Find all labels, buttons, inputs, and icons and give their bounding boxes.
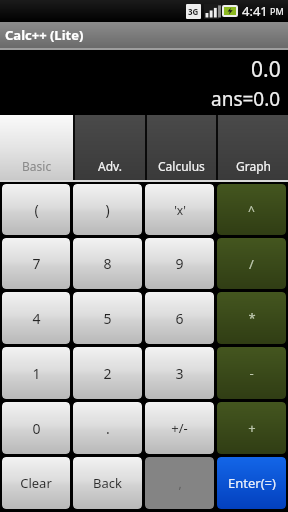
button[interactable]: Enter(=) — [217, 457, 286, 509]
button[interactable]: + — [217, 402, 286, 454]
staticText: Calculus — [158, 158, 205, 174]
staticText: / — [249, 255, 254, 273]
staticText: 3G — [188, 6, 199, 17]
button[interactable]: . — [73, 402, 142, 454]
staticText: Adv. — [98, 158, 122, 174]
staticText: . — [106, 419, 110, 438]
staticText: ans=0.0 — [211, 86, 281, 112]
button[interactable]: ^ — [217, 184, 286, 235]
staticText: - — [249, 364, 254, 382]
button[interactable]: * — [217, 292, 286, 344]
button[interactable]: 3 — [145, 347, 214, 399]
staticText: 'x' — [174, 202, 186, 218]
staticText: 4 — [32, 309, 41, 328]
staticText: ) — [105, 200, 110, 219]
button[interactable]: 6 — [145, 292, 214, 344]
staticText: Back — [93, 474, 122, 492]
staticText: , — [178, 475, 182, 491]
staticText: Clear — [20, 474, 52, 492]
button[interactable]: / — [217, 238, 286, 289]
button[interactable]: ) — [73, 184, 142, 235]
staticText: 1 — [32, 364, 41, 383]
button[interactable]: 8 — [73, 238, 142, 289]
staticText: Graph — [236, 158, 271, 174]
staticText: 6 — [175, 309, 184, 328]
staticText: + — [248, 419, 256, 437]
button[interactable]: ( — [2, 184, 70, 235]
staticText: 0 — [32, 419, 41, 438]
button[interactable]: 1 — [2, 347, 70, 399]
button[interactable]: Adv. — [75, 115, 145, 180]
staticText: Basic — [22, 158, 52, 174]
staticText: ^ — [248, 202, 255, 218]
button[interactable]: 9 — [145, 238, 214, 289]
staticText: Enter(=) — [228, 474, 276, 492]
staticText: 5 — [103, 309, 112, 328]
button[interactable]: 0 — [2, 402, 70, 454]
button[interactable]: Clear — [2, 457, 70, 509]
staticText: 3 — [175, 364, 184, 383]
staticText: 7 — [32, 254, 41, 273]
staticText: * — [248, 309, 256, 327]
button[interactable]: 5 — [73, 292, 142, 344]
button[interactable]: Calculus — [147, 115, 216, 180]
staticText: 2 — [103, 364, 112, 383]
staticText: +/- — [171, 419, 188, 437]
button[interactable]: Back — [73, 457, 142, 509]
button[interactable]: , — [145, 457, 214, 509]
staticText: 9 — [175, 254, 184, 273]
button[interactable]: +/- — [145, 402, 214, 454]
staticText: 0.0 — [251, 55, 281, 84]
button[interactable]: 'x' — [145, 184, 214, 235]
button[interactable]: Graph — [218, 115, 288, 180]
staticText: PM — [270, 5, 284, 17]
staticText: 4:41 — [242, 2, 268, 20]
button[interactable]: - — [217, 347, 286, 399]
button[interactable]: Basic — [0, 115, 73, 180]
staticText: Calc++ (Lite) — [5, 26, 84, 44]
button[interactable]: 2 — [73, 347, 142, 399]
button[interactable]: 7 — [2, 238, 70, 289]
staticText: 8 — [103, 254, 112, 273]
staticText: ( — [34, 200, 39, 219]
button[interactable]: 4 — [2, 292, 70, 344]
